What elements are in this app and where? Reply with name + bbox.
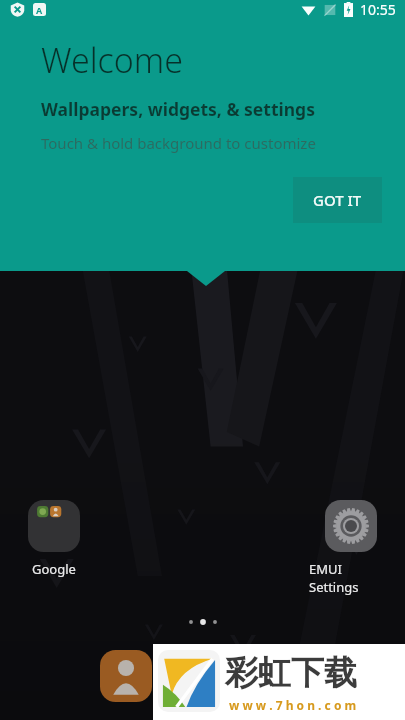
staticText: Touch & hold background to customize — [41, 133, 316, 153]
staticText: 10:55 — [360, 0, 396, 19]
staticText: Wallpapers, widgets, & settings — [41, 97, 315, 121]
staticText: Google — [32, 560, 76, 578]
staticText: w w w . 7 h o n . c o m — [229, 697, 357, 713]
button[interactable]: Google — [12, 500, 96, 578]
staticText: GOT IT — [313, 190, 362, 210]
staticText: 彩虹下载 — [225, 652, 357, 694]
button[interactable]: GOT IT — [293, 177, 382, 223]
button[interactable]: EMUI Settings — [309, 500, 393, 596]
button[interactable]: Contacts — [100, 650, 152, 702]
staticText: Welcome — [41, 37, 183, 83]
staticText: A — [36, 4, 43, 16]
staticText: EMUI Settings — [309, 560, 393, 596]
